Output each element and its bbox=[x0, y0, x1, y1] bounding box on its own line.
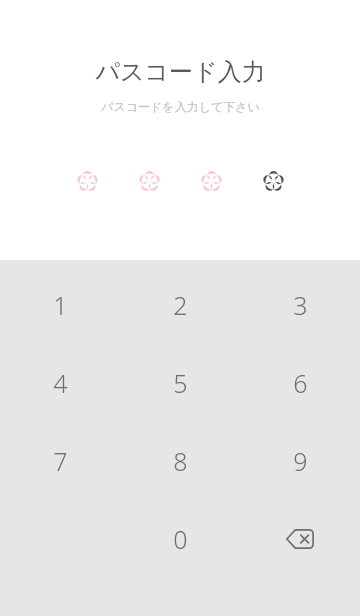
button[interactable]: 3 bbox=[240, 266, 360, 344]
button[interactable]: 5 bbox=[120, 344, 240, 422]
button[interactable]: 0 bbox=[120, 500, 240, 578]
button[interactable]: 1 bbox=[0, 266, 120, 344]
staticText: 8 bbox=[173, 444, 188, 478]
staticText: パスコードを入力して下さい bbox=[101, 99, 260, 114]
button[interactable]: 2 bbox=[120, 266, 240, 344]
staticText: 3 bbox=[293, 288, 308, 322]
button[interactable]: 6 bbox=[240, 344, 360, 422]
staticText: 7 bbox=[53, 444, 68, 478]
staticText: 6 bbox=[293, 366, 308, 400]
button[interactable]: 8 bbox=[120, 422, 240, 500]
staticText: 0 bbox=[173, 522, 188, 556]
button[interactable]: 4 bbox=[0, 344, 120, 422]
staticText: 9 bbox=[293, 444, 308, 478]
button[interactable]: Delete bbox=[240, 500, 360, 578]
staticText: パスコード入力 bbox=[95, 57, 266, 87]
button[interactable]: 7 bbox=[0, 422, 120, 500]
staticText: 4 bbox=[53, 366, 68, 400]
button[interactable]: 9 bbox=[240, 422, 360, 500]
staticText: 1 bbox=[53, 288, 68, 322]
staticText: 5 bbox=[173, 366, 188, 400]
staticText: 2 bbox=[173, 288, 188, 322]
